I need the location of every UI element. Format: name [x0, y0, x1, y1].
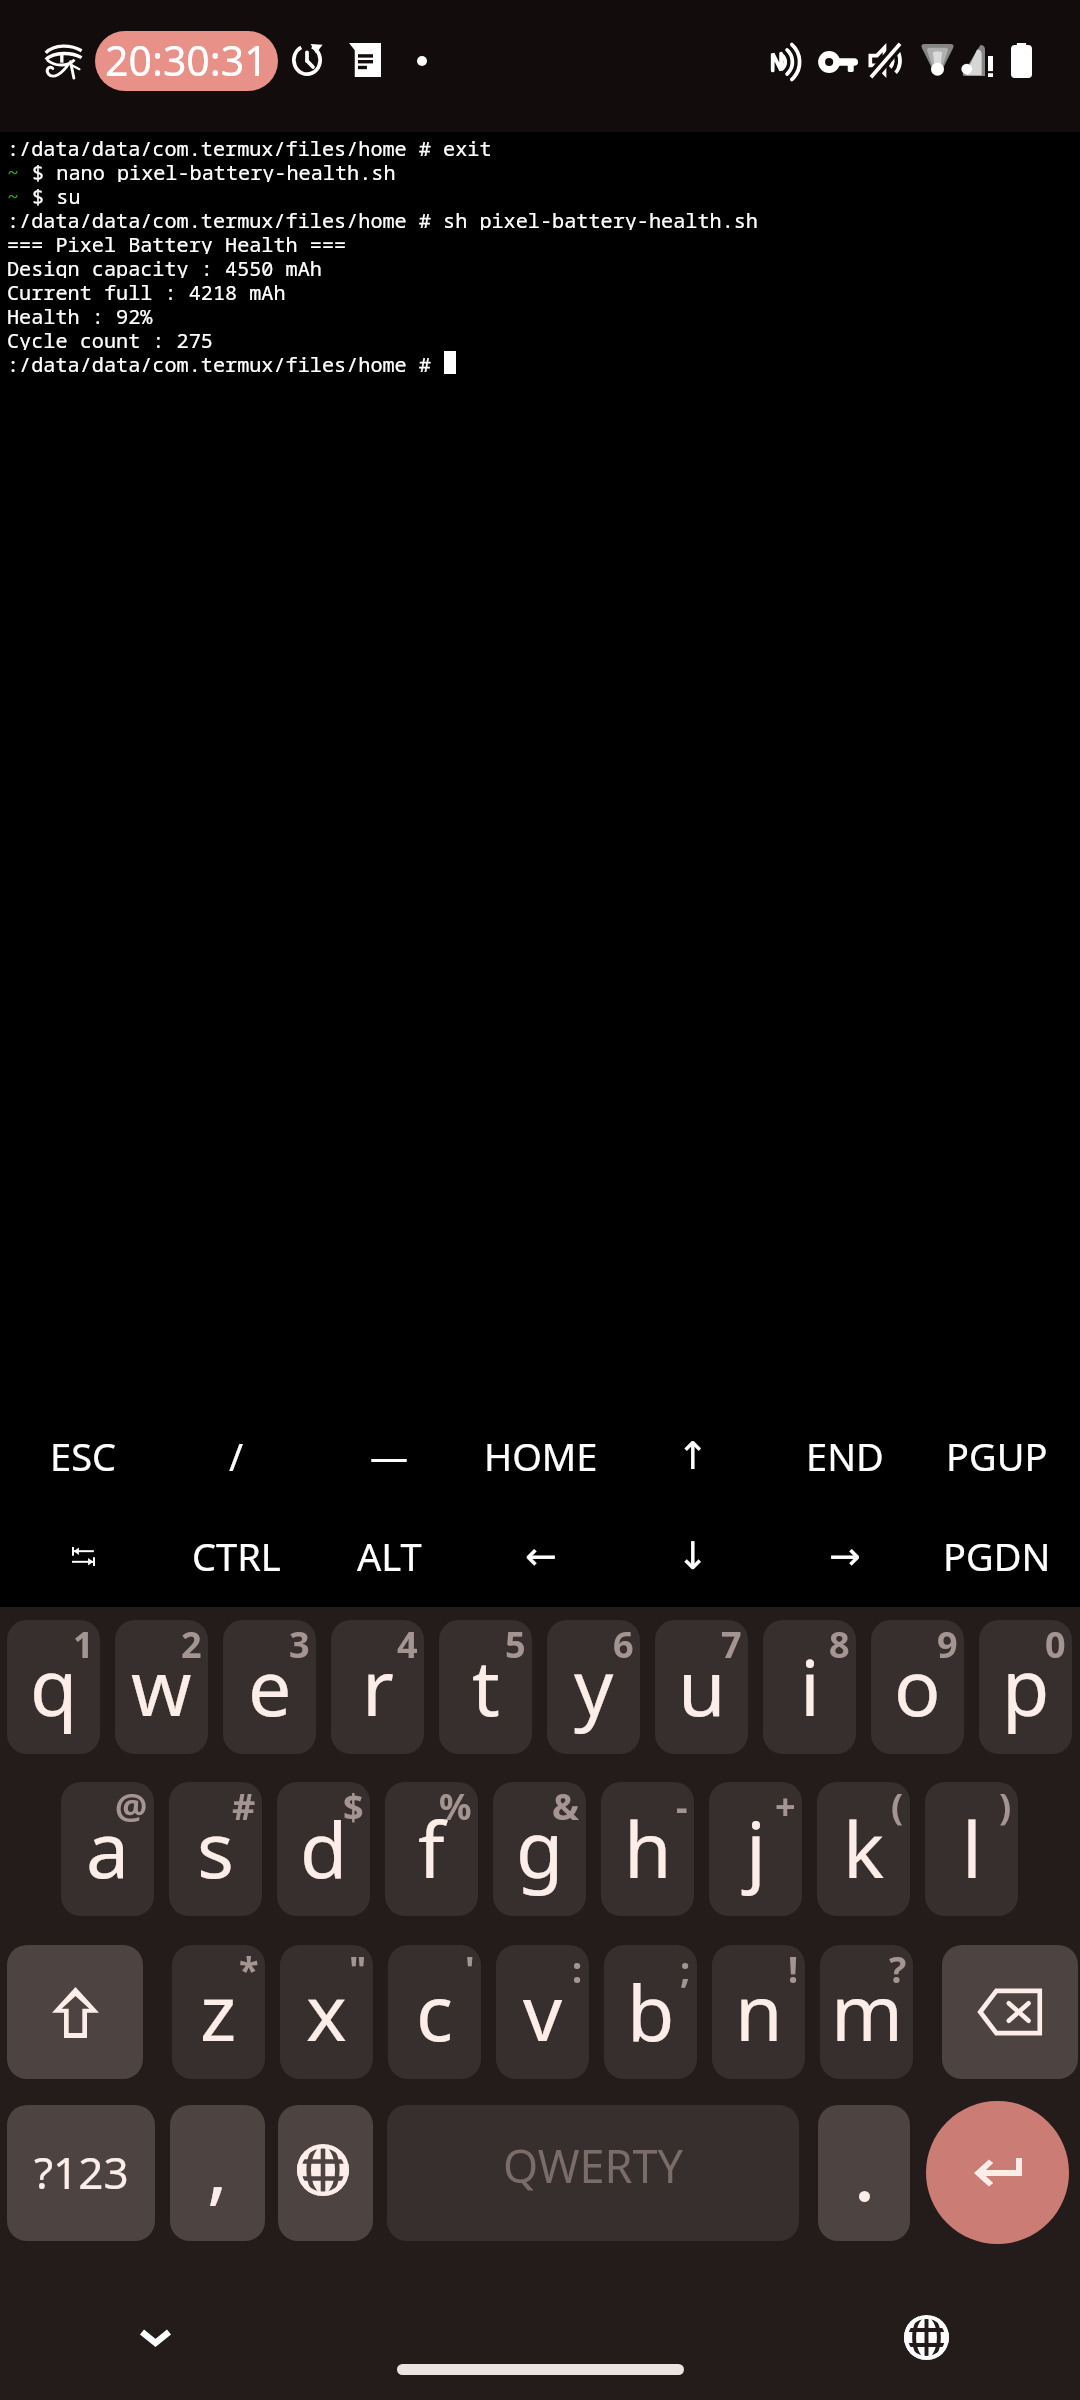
button[interactable]: 6: [547, 1620, 640, 1754]
button[interactable]: Tab: [7, 1506, 160, 1606]
staticText: d: [300, 1796, 348, 1901]
staticText: Current full : 4218 mAh: [7, 278, 286, 302]
button[interactable]: ,: [170, 2105, 265, 2241]
button[interactable]: ↑: [617, 1406, 769, 1506]
button[interactable]: 1: [7, 1620, 100, 1754]
button[interactable]: !: [712, 1945, 805, 2079]
button[interactable]: CTRL: [160, 1506, 313, 1606]
button[interactable]: ←: [465, 1506, 617, 1606]
staticText: ←: [525, 1534, 557, 1578]
staticText: n: [735, 1959, 783, 2064]
button[interactable]: +: [709, 1782, 802, 1916]
button[interactable]: (: [817, 1782, 910, 1916]
staticText: →: [829, 1534, 861, 1578]
button[interactable]: 2: [115, 1620, 208, 1754]
button[interactable]: Change language: [890, 2301, 962, 2373]
staticText: @: [115, 1782, 148, 1831]
staticText: w: [131, 1634, 192, 1739]
button[interactable]: QWERTY: [387, 2105, 799, 2241]
button[interactable]: Backspace: [942, 1945, 1078, 2079]
staticText: PGDN: [943, 1530, 1051, 1582]
staticText: CTRL: [192, 1530, 281, 1582]
staticText: l: [962, 1796, 982, 1901]
staticText: k: [843, 1796, 885, 1901]
staticText: 8: [829, 1620, 850, 1669]
button[interactable]: ALT: [313, 1506, 465, 1606]
staticText: :/data/data/com.termux/files/home #: [7, 350, 444, 374]
staticText: o: [894, 1634, 941, 1739]
staticText: e: [248, 1634, 292, 1739]
button[interactable]: Shift: [7, 1945, 143, 2079]
button[interactable]: END: [769, 1406, 921, 1506]
button[interactable]: ": [280, 1945, 373, 2079]
button[interactable]: ↓: [617, 1506, 769, 1606]
button[interactable]: 9: [871, 1620, 964, 1754]
staticText: !: [788, 1945, 799, 1994]
staticText: p: [1002, 1634, 1050, 1739]
staticText: z: [200, 1959, 237, 2064]
staticText: r: [362, 1634, 394, 1739]
staticText: y: [574, 1634, 614, 1739]
button[interactable]: $: [277, 1782, 370, 1916]
staticText: f: [418, 1796, 445, 1901]
staticText: ~: [7, 182, 20, 206]
button[interactable]: 0: [979, 1620, 1072, 1754]
button[interactable]: *: [172, 1945, 265, 2079]
staticText: c: [416, 1959, 453, 2064]
button[interactable]: 5: [439, 1620, 532, 1754]
button[interactable]: 3: [223, 1620, 316, 1754]
button[interactable]: 4: [331, 1620, 424, 1754]
staticText: ": [349, 1945, 367, 1994]
button[interactable]: ?: [820, 1945, 913, 2079]
button[interactable]: ?123: [7, 2105, 155, 2241]
button[interactable]: %: [385, 1782, 478, 1916]
staticText: Health : 92%: [7, 302, 153, 326]
staticText: i: [800, 1634, 820, 1739]
staticText: 7: [721, 1620, 742, 1669]
staticText: -: [676, 1782, 688, 1831]
button[interactable]: ): [925, 1782, 1018, 1916]
button[interactable]: 8: [763, 1620, 856, 1754]
staticText: PGUP: [946, 1430, 1048, 1482]
staticText: ): [999, 1782, 1012, 1831]
button[interactable]: @: [61, 1782, 154, 1916]
button[interactable]: &: [493, 1782, 586, 1916]
staticText: b: [627, 1959, 675, 2064]
staticText: ,: [207, 2114, 228, 2219]
button[interactable]: ': [388, 1945, 481, 2079]
button[interactable]: →: [769, 1506, 921, 1606]
staticText: 5: [505, 1620, 526, 1669]
button[interactable]: 20:30:31: [95, 31, 278, 91]
button[interactable]: Enter: [926, 2101, 1069, 2244]
staticText: x: [306, 1959, 347, 2064]
button[interactable]: ;: [604, 1945, 697, 2079]
staticText: —: [370, 1430, 409, 1482]
staticText: === Pixel Battery Health ===: [7, 230, 347, 254]
staticText: #: [232, 1782, 256, 1831]
button[interactable]: :: [496, 1945, 589, 2079]
staticText: ;: [680, 1945, 691, 1994]
button[interactable]: #: [169, 1782, 262, 1916]
staticText: $ su: [20, 182, 81, 206]
staticText: ': [465, 1945, 475, 1994]
button[interactable]: PGDN: [921, 1506, 1073, 1606]
staticText: ↓: [677, 1534, 709, 1578]
staticText: QWERTY: [503, 2135, 684, 2196]
staticText: 6: [613, 1620, 634, 1669]
button[interactable]: —: [313, 1406, 465, 1506]
staticText: ?123: [34, 2142, 129, 2202]
button[interactable]: Hide keyboard: [119, 2301, 191, 2373]
staticText: j: [746, 1796, 766, 1901]
staticText: *: [239, 1945, 259, 1994]
staticText: Design capacity : 4550 mAh: [7, 254, 322, 278]
button[interactable]: -: [601, 1782, 694, 1916]
button[interactable]: ESC: [7, 1406, 160, 1506]
button[interactable]: 7: [655, 1620, 748, 1754]
staticText: HOME: [484, 1430, 598, 1482]
button[interactable]: HOME: [465, 1406, 617, 1506]
button[interactable]: /: [160, 1406, 313, 1506]
button[interactable]: Period: [818, 2105, 910, 2241]
button[interactable]: Change language: [278, 2105, 373, 2241]
staticText: q: [30, 1634, 78, 1739]
button[interactable]: PGUP: [921, 1406, 1073, 1506]
